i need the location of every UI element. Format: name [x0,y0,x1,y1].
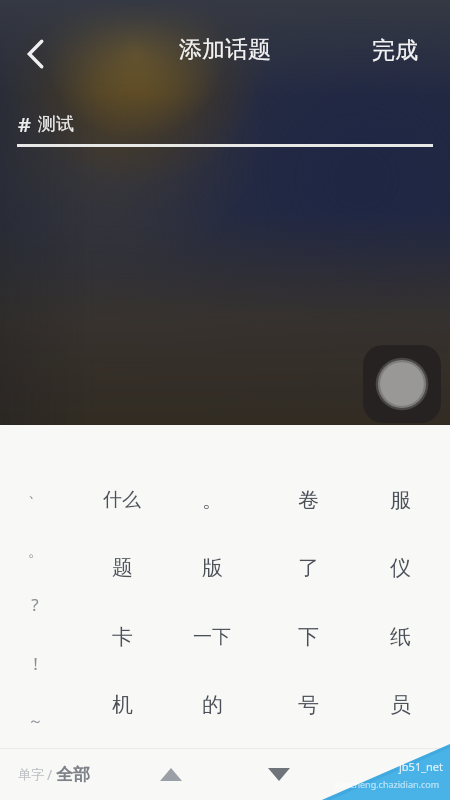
button[interactable]: 的 [169,678,255,732]
button[interactable]: 什么 [79,473,165,527]
staticText: 题 [112,555,133,581]
button[interactable]: 完成 [350,0,440,100]
button[interactable]: 员 [357,678,443,732]
button[interactable]: 号 [265,678,351,732]
staticText: 员 [390,692,411,718]
staticText: ～ [28,712,43,731]
staticText: 。 [202,487,223,513]
button[interactable]: 服 [357,473,443,527]
staticText: 下 [298,624,319,650]
staticText: 机 [112,692,133,718]
button[interactable]: 。 [8,534,62,568]
button[interactable]: 卷 [265,473,351,527]
staticText: ! [33,652,38,675]
button[interactable]: 、 [8,475,62,509]
staticText: 号 [298,692,319,718]
staticText: 。 [28,542,43,561]
staticText: 仪 [390,555,411,581]
staticText: 一下 [193,625,231,649]
button[interactable]: ～ [8,704,62,738]
staticText: 测试 [38,113,74,136]
button[interactable]: ! [8,646,62,680]
staticText: 、 [28,483,43,502]
button[interactable]: 了 [265,541,351,595]
button[interactable]: 。 [169,473,255,527]
button[interactable]: Back [10,28,62,80]
staticText: 单字 [18,766,44,782]
button[interactable]: 单字 [18,748,90,800]
staticText: # [18,111,31,138]
button[interactable]: # [18,100,450,148]
staticText: / [47,765,53,784]
staticText: 纸 [390,624,411,650]
staticText: 全部 [56,764,90,785]
staticText: 什么 [103,488,141,512]
staticText: jb51_net [399,759,444,774]
button[interactable]: Camera [363,345,441,423]
staticText: 版 [202,555,223,581]
button[interactable]: Next page [253,748,305,800]
button[interactable]: 下 [265,610,351,664]
staticText: 了 [298,555,319,581]
staticText: jiaocheng.chazidian.com [335,778,440,790]
button[interactable]: ? [8,587,62,621]
button[interactable]: 卡 [79,610,165,664]
staticText: 的 [202,692,223,718]
button[interactable]: 题 [79,541,165,595]
staticText: 服 [390,487,411,513]
button[interactable]: 纸 [357,610,443,664]
button[interactable]: 版 [169,541,255,595]
button[interactable]: 机 [79,678,165,732]
staticText: ? [31,593,39,616]
button[interactable]: 一下 [169,610,255,664]
staticText: 卷 [298,487,319,513]
button[interactable]: 仪 [357,541,443,595]
staticText: 完成 [372,36,418,65]
button[interactable]: Previous page [145,748,197,800]
staticText: 添加话题 [179,35,271,64]
staticText: 卡 [112,624,133,650]
